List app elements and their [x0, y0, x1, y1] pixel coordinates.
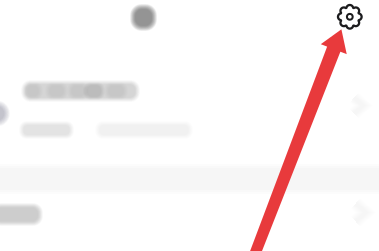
- button[interactable]: Settings: [328, 0, 372, 39]
- button[interactable]: [0, 55, 379, 166]
- button[interactable]: [0, 192, 379, 251]
